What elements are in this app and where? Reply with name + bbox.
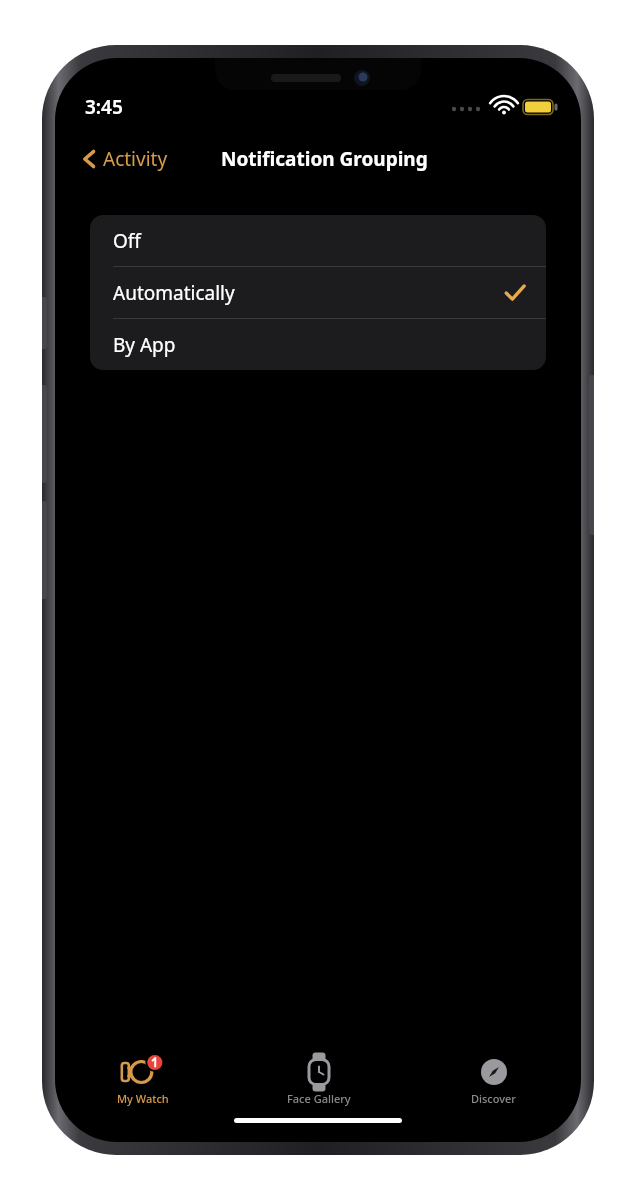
staticText: My Watch: [117, 1091, 169, 1106]
staticText: 3:45: [85, 94, 123, 120]
button[interactable]: By App: [90, 319, 546, 370]
staticText: Activity: [103, 146, 168, 172]
button[interactable]: My Watch: [55, 1044, 231, 1118]
staticText: Automatically: [113, 280, 235, 306]
button[interactable]: Automatically: [90, 267, 546, 319]
staticText: Face Gallery: [287, 1091, 351, 1106]
button[interactable]: Activity: [77, 142, 172, 176]
staticText: Discover: [471, 1091, 517, 1106]
staticText: By App: [113, 332, 176, 358]
button[interactable]: Face Gallery: [231, 1044, 406, 1118]
staticText: Off: [113, 228, 141, 254]
staticText: Notification Grouping: [221, 146, 428, 172]
button[interactable]: Off: [90, 215, 546, 267]
button[interactable]: Discover: [406, 1044, 581, 1118]
